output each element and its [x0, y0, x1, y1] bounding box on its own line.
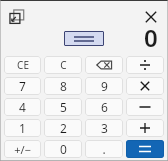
staticText: 1 — [19, 120, 26, 136]
staticText: C — [60, 58, 67, 72]
staticText: 0 — [144, 21, 158, 54]
staticText: . — [102, 141, 106, 157]
button[interactable]: +/− — [4, 140, 41, 158]
button[interactable]: 7 — [4, 77, 41, 95]
staticText: 0 — [60, 141, 67, 157]
staticText: 5 — [60, 99, 67, 115]
button[interactable]: Backspace — [85, 56, 123, 74]
staticText: 2 — [60, 120, 67, 136]
staticText: CE — [17, 58, 29, 72]
button[interactable]: 1 — [4, 119, 41, 137]
button[interactable]: Menu — [64, 31, 104, 46]
button[interactable]: Add — [126, 119, 164, 137]
button[interactable]: 8 — [44, 77, 82, 95]
staticText: 9 — [101, 78, 108, 94]
button[interactable]: Close — [139, 5, 163, 29]
button[interactable]: Equals — [126, 140, 164, 158]
button[interactable]: Restore window — [6, 6, 28, 28]
button[interactable]: . — [85, 140, 123, 158]
button[interactable]: 3 — [85, 119, 123, 137]
button[interactable]: Multiply — [126, 77, 164, 95]
button[interactable]: 4 — [4, 98, 41, 116]
button[interactable]: C — [44, 56, 82, 74]
button[interactable]: 0 — [44, 140, 82, 158]
staticText: 3 — [101, 120, 108, 136]
button[interactable]: 2 — [44, 119, 82, 137]
staticText: 6 — [101, 99, 108, 115]
button[interactable]: 6 — [85, 98, 123, 116]
staticText: +/− — [14, 142, 31, 157]
staticText: 4 — [19, 99, 26, 115]
button[interactable]: CE — [4, 56, 41, 74]
staticText: 8 — [60, 78, 67, 94]
button[interactable]: 5 — [44, 98, 82, 116]
staticText: 7 — [19, 78, 26, 94]
button[interactable]: 9 — [85, 77, 123, 95]
button[interactable]: Divide — [126, 56, 164, 74]
button[interactable]: Subtract — [126, 98, 164, 116]
